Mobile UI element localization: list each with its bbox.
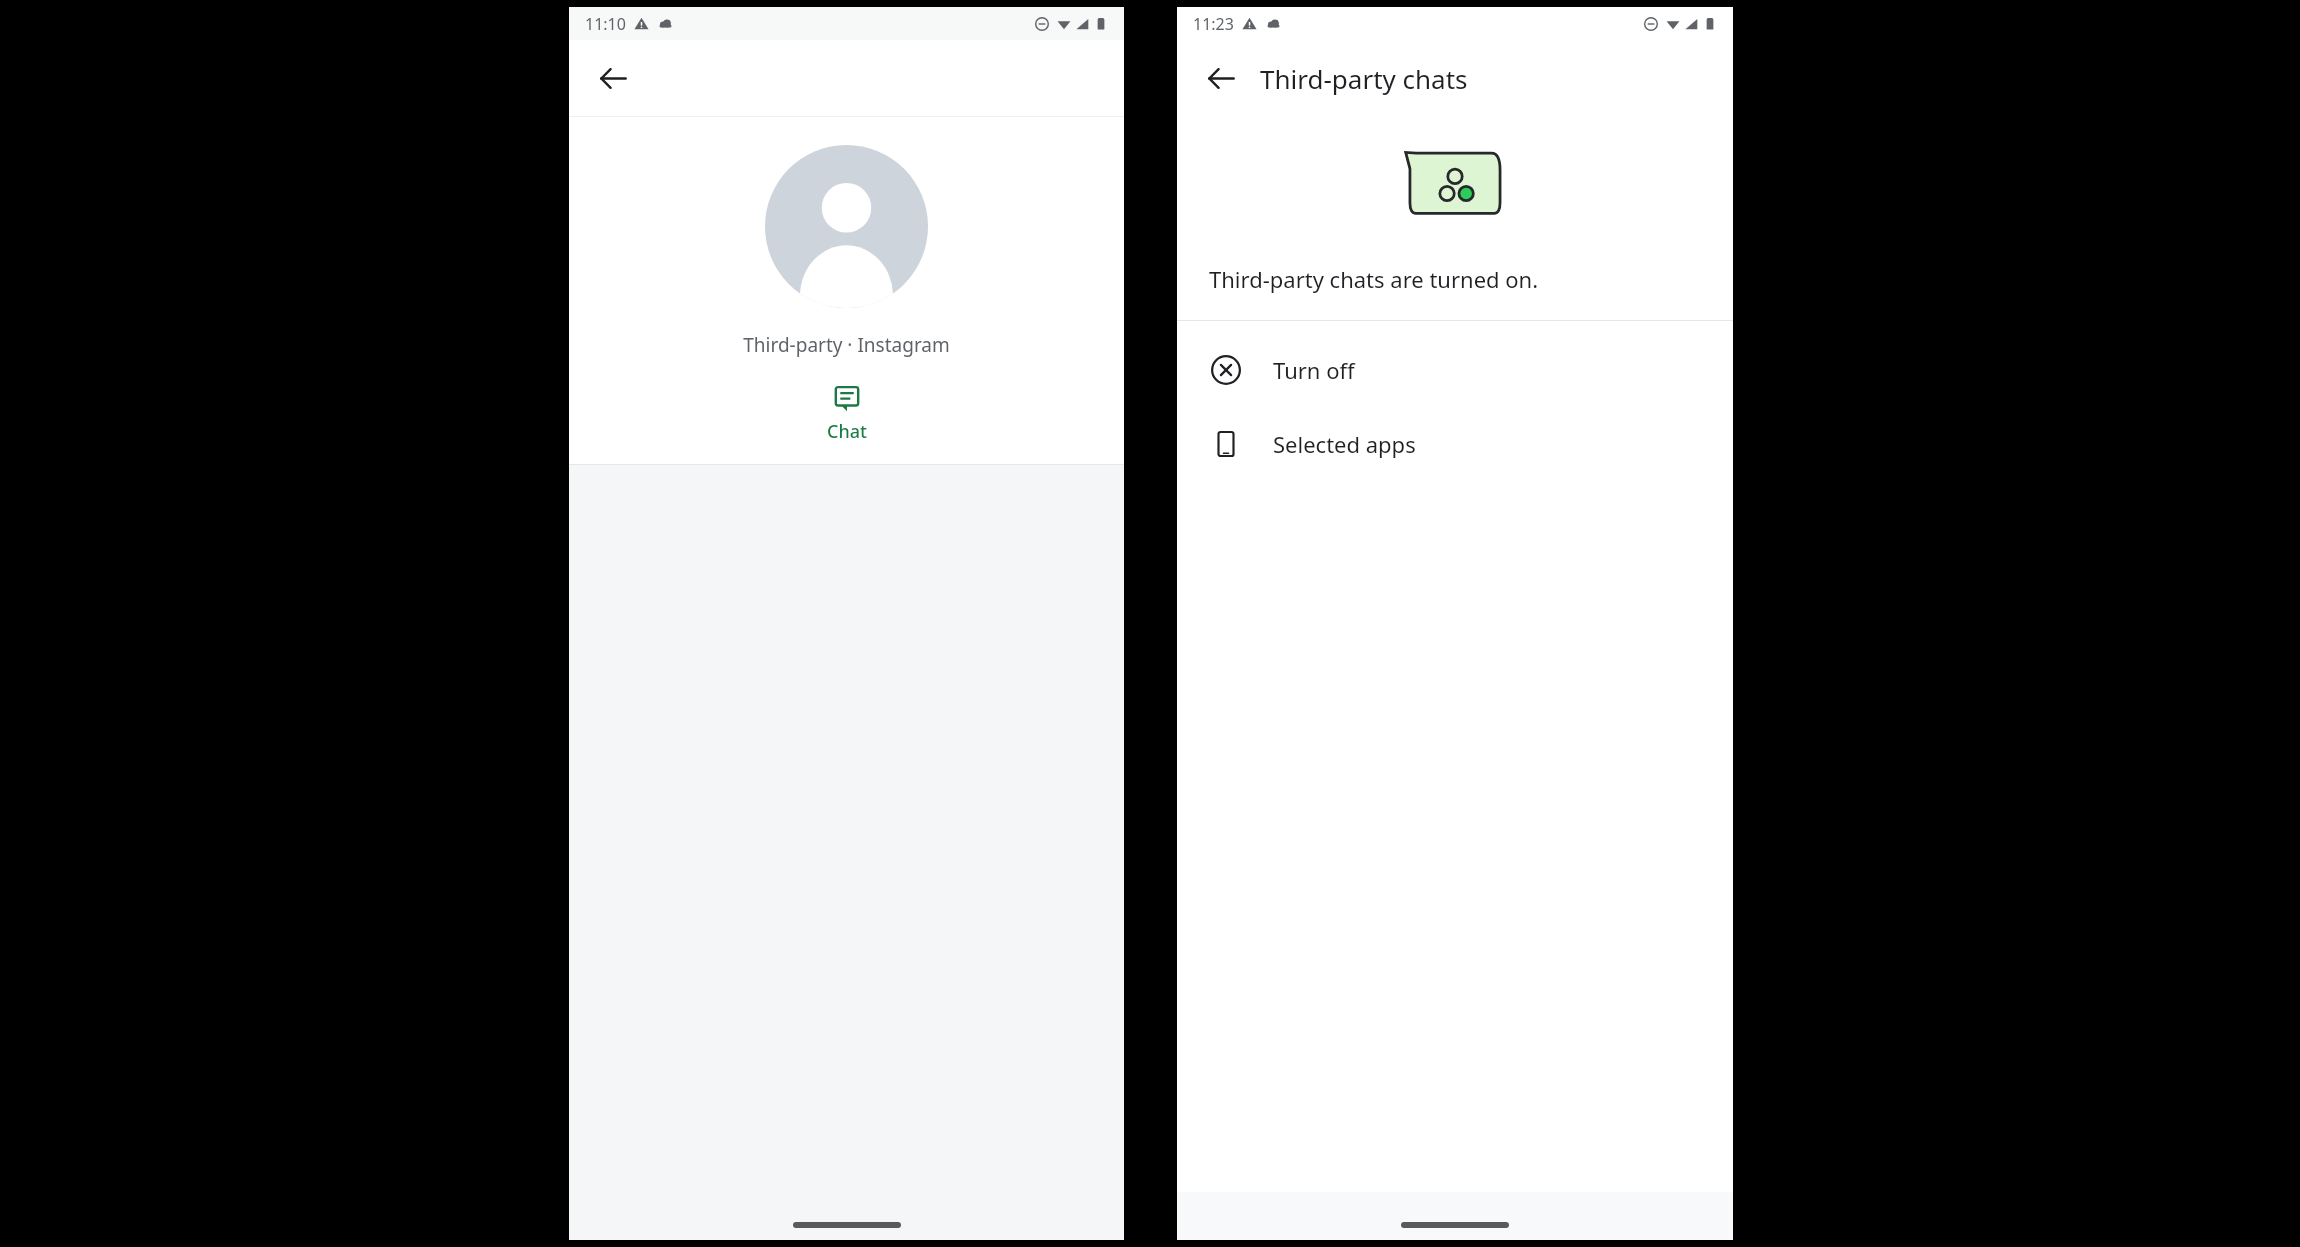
staticText: 11:10	[585, 13, 626, 35]
button[interactable]: Turn off	[1177, 333, 1733, 407]
staticText: Selected apps	[1273, 429, 1416, 459]
staticText: Chat	[827, 419, 867, 444]
staticText: Turn off	[1273, 355, 1355, 385]
button[interactable]: Selected apps	[1177, 407, 1733, 481]
staticText: Third-party · Instagram	[569, 332, 1124, 358]
button[interactable]: Chat	[805, 380, 889, 448]
staticText: Third-party chats are turned on.	[1209, 264, 1539, 294]
staticText: Third-party chats	[1260, 61, 1468, 96]
button[interactable]: Back	[583, 48, 643, 108]
button[interactable]: Back	[1191, 48, 1251, 108]
staticText: 11:23	[1193, 13, 1234, 35]
